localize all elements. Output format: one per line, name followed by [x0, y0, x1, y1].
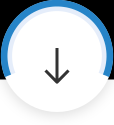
button[interactable]: Download [0, 0, 114, 125]
